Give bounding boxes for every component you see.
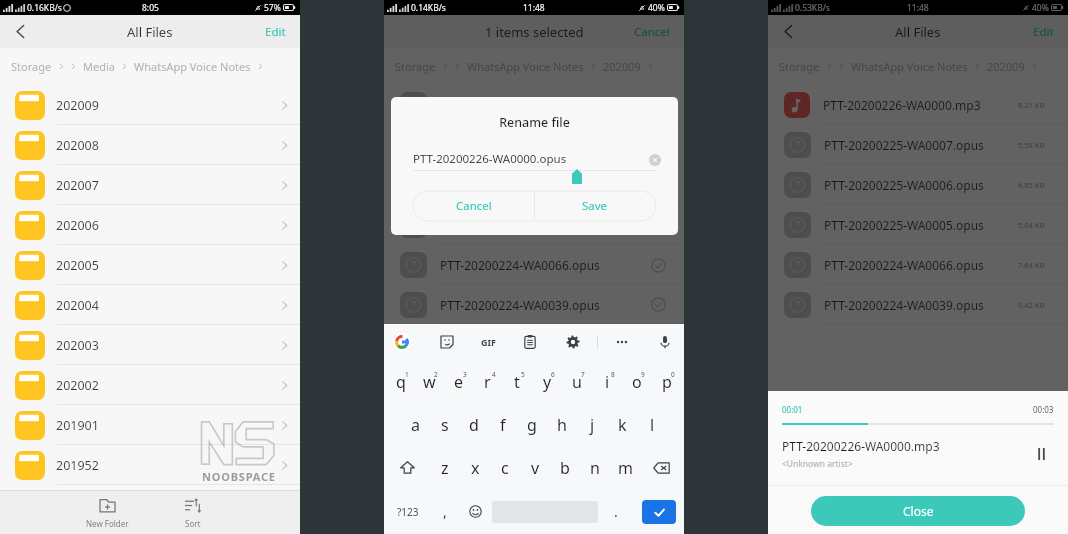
button[interactable]: WhatsApp Voice Notes [851, 59, 968, 74]
button[interactable]: k [607, 403, 637, 446]
button[interactable]: Save [534, 191, 656, 221]
button[interactable]: h [547, 403, 577, 446]
button[interactable]: 202002 [0, 365, 300, 405]
staticText: Storage [11, 59, 52, 74]
button[interactable]: Done [642, 500, 676, 524]
button[interactable]: WhatsApp Voice Notes [467, 59, 584, 74]
button[interactable]: PTT-20200225-WA0007.opus [384, 125, 684, 165]
button[interactable]: 201952 [0, 445, 300, 485]
button[interactable]: w [415, 360, 444, 403]
button[interactable]: PTT-20200226-WA0000.opus [384, 85, 684, 125]
button[interactable]: b [550, 446, 580, 489]
staticText: 7.64 KB [1018, 260, 1045, 270]
button[interactable]: x [460, 446, 490, 489]
button[interactable]: Stickers [438, 333, 456, 351]
button[interactable]: t [502, 360, 532, 403]
button[interactable]: 202009 [987, 59, 1025, 74]
button[interactable]: y [532, 360, 562, 403]
button[interactable]: PTT-20200224-WA0066.opus [384, 245, 684, 285]
button[interactable]: PTT-20200226-WA0000.mp3 [768, 85, 1068, 125]
button[interactable]: s [430, 403, 459, 446]
button[interactable]: z [429, 446, 460, 489]
staticText: All Files [895, 23, 941, 41]
button[interactable]: Google [392, 332, 412, 352]
button[interactable]: 201901 [0, 405, 300, 445]
staticText: 202007 [56, 177, 99, 194]
button[interactable]: g [517, 403, 547, 446]
button[interactable]: a [401, 403, 430, 446]
button[interactable]: Sort [150, 491, 235, 534]
button[interactable]: More options [613, 333, 631, 351]
staticText: Storage [779, 59, 820, 74]
button[interactable]: Backspace [640, 446, 682, 489]
button[interactable]: WhatsApp Voice Notes [134, 59, 251, 74]
button[interactable]: PTT-20200225-WA0005.opus [768, 205, 1068, 245]
staticText: PTT-20200224-WA0039.opus [824, 297, 984, 313]
button[interactable]: Media [83, 59, 115, 74]
button[interactable]: u [562, 360, 592, 403]
button[interactable]: l [637, 403, 667, 446]
staticText: Close [903, 503, 934, 519]
button[interactable]: 202003 [0, 325, 300, 365]
button[interactable]: m [610, 446, 640, 489]
button[interactable]: Edit [1023, 15, 1068, 48]
button[interactable]: Close [811, 496, 1025, 526]
staticText: 202009 [987, 59, 1025, 74]
button[interactable]: c [490, 446, 520, 489]
staticText: 4.85 KB [1018, 180, 1045, 190]
button[interactable]: p [652, 360, 682, 403]
staticText: Cancel [456, 198, 492, 214]
button[interactable]: PTT-20200225-WA0005.opus [384, 205, 684, 245]
button[interactable]: v [520, 446, 550, 489]
button[interactable]: o [622, 360, 652, 403]
button[interactable]: q [386, 360, 415, 403]
button[interactable]: Back [768, 15, 808, 48]
staticText: NOOBSPACE [202, 469, 276, 484]
button[interactable]: PTT-20200224-WA0066.opus [768, 245, 1068, 285]
button[interactable]: Pause [1028, 441, 1054, 467]
button[interactable]: d [459, 403, 488, 446]
button[interactable]: f [488, 403, 517, 446]
button[interactable]: Emoji [458, 489, 492, 534]
button[interactable]: Shift [386, 446, 429, 489]
button[interactable]: PTT-20200225-WA0007.opus [768, 125, 1068, 165]
button[interactable]: Cancel [413, 191, 534, 221]
button[interactable]: Voice input [656, 333, 674, 351]
button[interactable]: ?123 [384, 489, 432, 534]
button[interactable]: j [577, 403, 607, 446]
button[interactable]: Storage [779, 59, 820, 74]
staticText: y [543, 371, 552, 393]
staticText: Media [83, 59, 115, 74]
staticText: 4 [492, 370, 496, 379]
button[interactable]: 202005 [0, 245, 300, 285]
button[interactable]: GIF [481, 336, 496, 348]
button[interactable]: , [432, 489, 458, 534]
button[interactable]: New Folder [65, 491, 150, 534]
button[interactable]: Settings [564, 333, 582, 351]
button[interactable]: Storage [11, 59, 52, 74]
button[interactable]: i [592, 360, 622, 403]
button[interactable]: PTT-20200224-WA0039.opus [768, 285, 1068, 325]
button[interactable]: Storage [395, 59, 436, 74]
button[interactable]: 202006 [0, 205, 300, 245]
button[interactable]: 202009 [603, 59, 641, 74]
staticText: 202003 [56, 337, 99, 354]
button[interactable]: 202008 [0, 125, 300, 165]
button[interactable]: 202004 [0, 285, 300, 325]
button[interactable]: Cancel [624, 15, 684, 48]
button[interactable]: n [580, 446, 610, 489]
button[interactable]: Back [0, 15, 40, 48]
button[interactable]: Clipboard [521, 333, 539, 351]
button[interactable]: e [444, 360, 473, 403]
button[interactable]: . [598, 489, 634, 534]
button[interactable]: PTT-20200224-WA0039.opus [384, 285, 684, 324]
button[interactable]: Edit [255, 15, 300, 48]
button[interactable]: PTT-20200225-WA0006.opus [768, 165, 1068, 205]
button[interactable]: r [473, 360, 502, 403]
button[interactable]: Clear text [647, 152, 662, 167]
button[interactable]: PTT-20200225-WA0006.opus [384, 165, 684, 205]
button[interactable]: 202009 [0, 85, 300, 125]
button[interactable]: 202007 [0, 165, 300, 205]
